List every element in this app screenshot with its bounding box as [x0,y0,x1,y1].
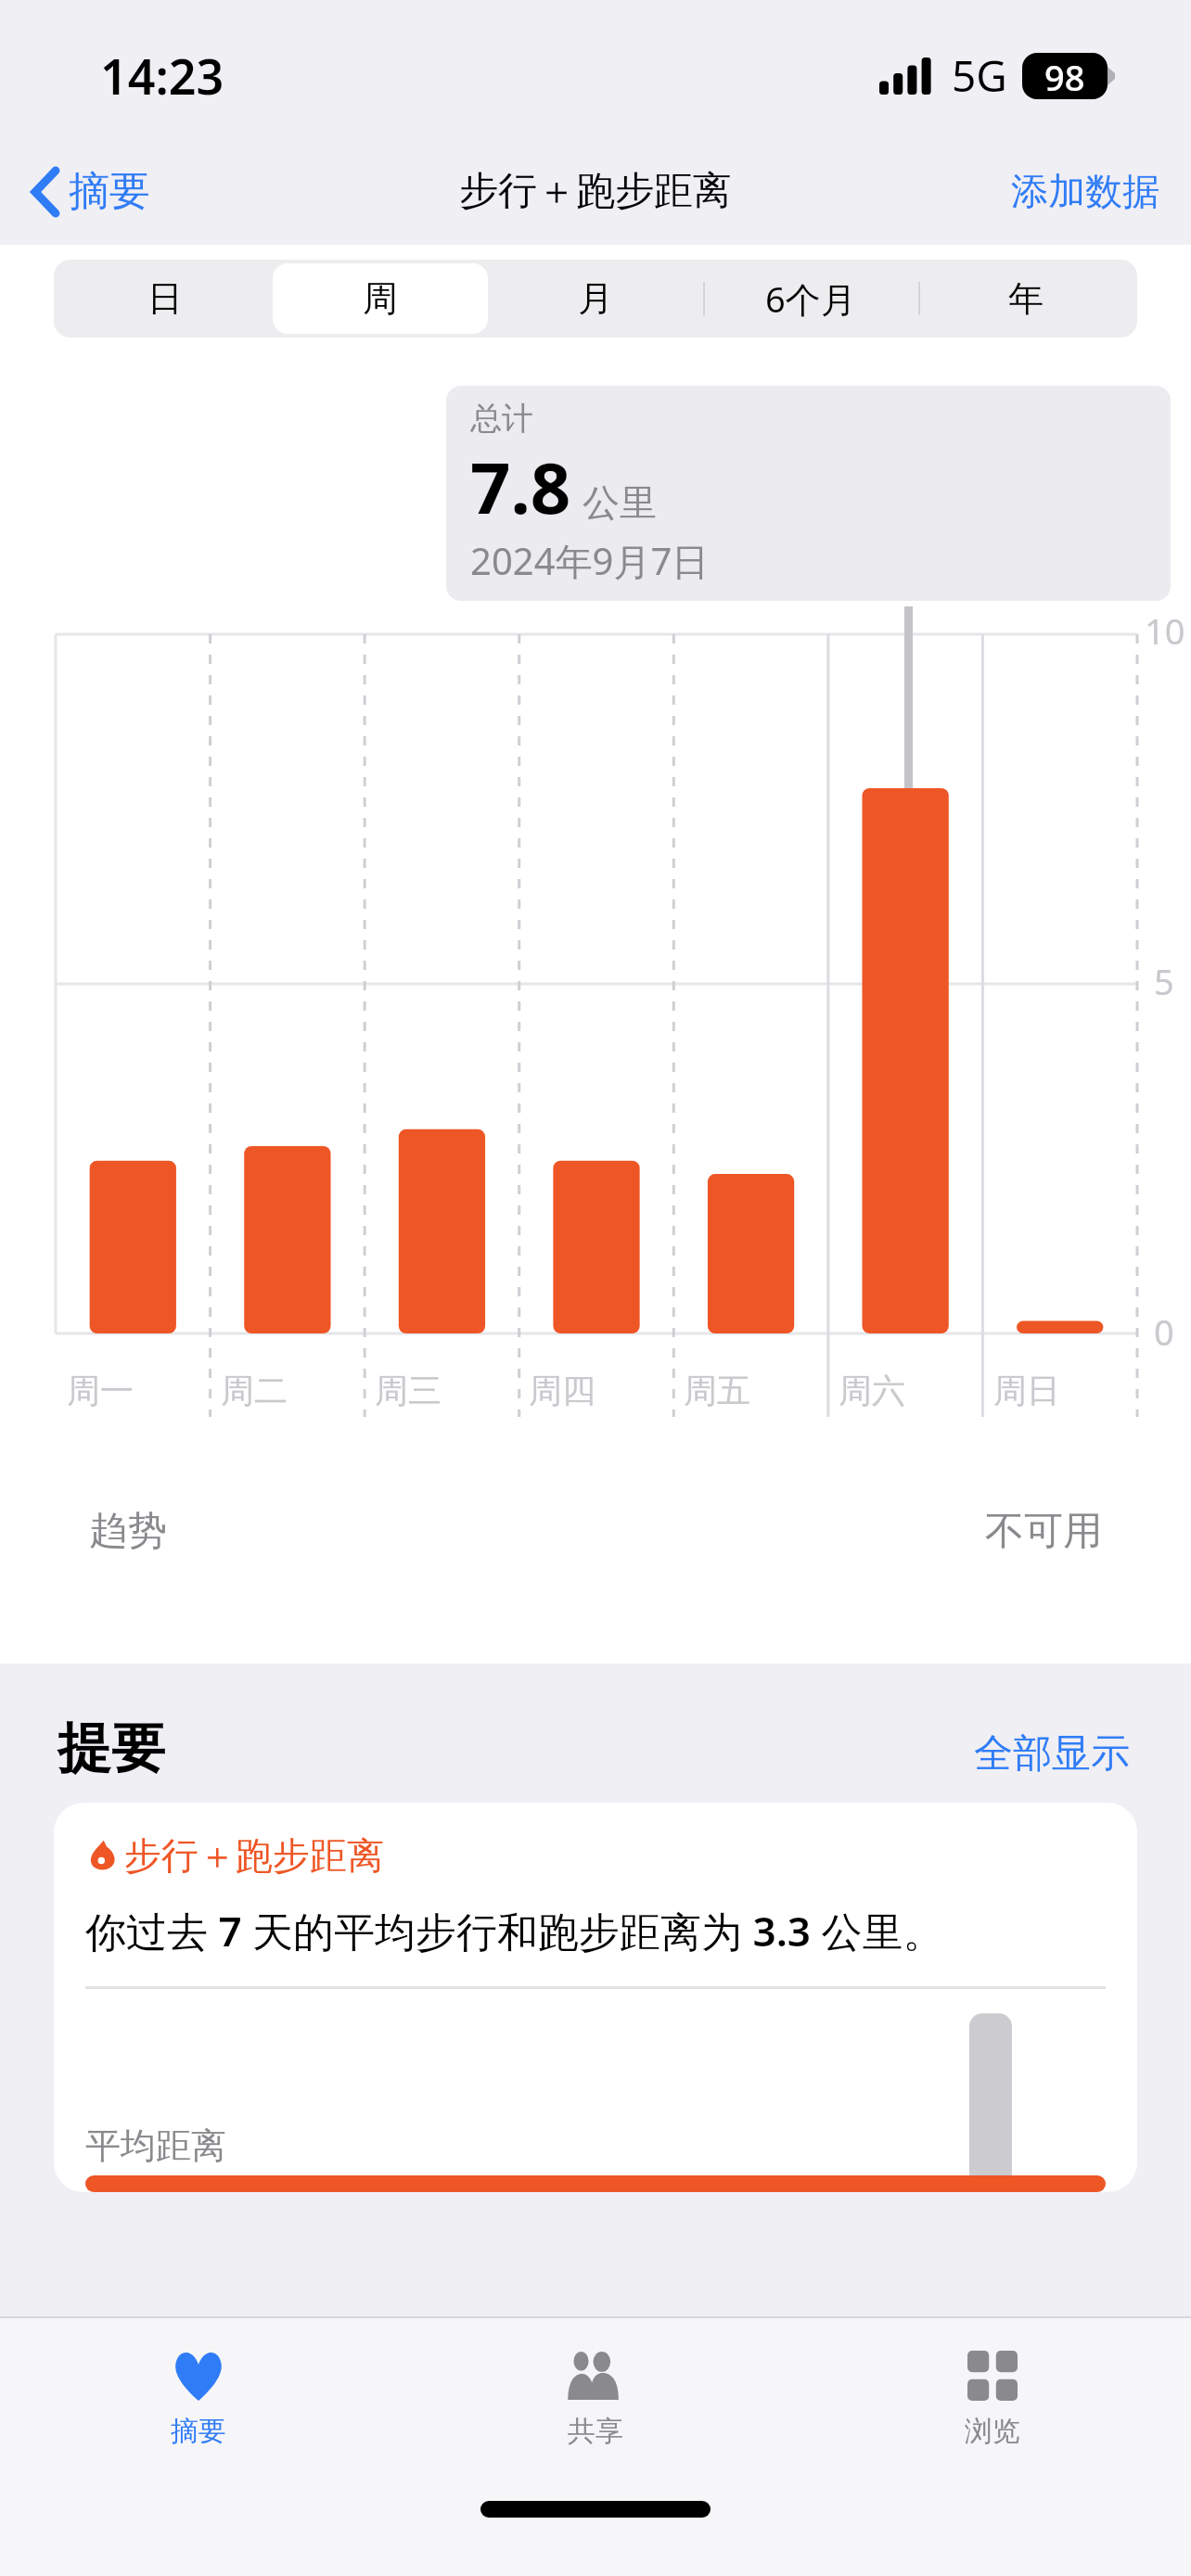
staticText: 2024年9月7日 [470,535,710,586]
staticText: 公里 [583,479,657,526]
staticText: 步行＋跑步距离 [459,167,732,216]
button[interactable]: 趋势 [56,1461,1135,1600]
staticText: 平均距离 [85,2123,226,2168]
staticText: 7.8 [470,439,571,535]
button[interactable]: 浏览 [794,2318,1191,2476]
staticText: 周一 [67,1370,134,1411]
staticText: 5 [1145,957,1174,1005]
staticText: 周二 [221,1370,288,1411]
staticText: 月 [578,276,613,321]
staticText: 摘要 [171,2414,226,2449]
staticText: 年 [1008,276,1044,321]
staticText: 步行＋跑步距离 [124,1832,384,1879]
staticText: 14:23 [100,43,224,108]
button[interactable]: 摘要 [0,159,165,224]
button[interactable]: 周 [273,263,488,334]
button[interactable]: 年 [918,263,1133,334]
staticText: 周日 [993,1370,1060,1411]
button[interactable]: 共享 [397,2318,794,2476]
staticText: 周五 [684,1370,750,1411]
staticText: 10 [1145,606,1185,655]
staticText: 不可用 [985,1507,1102,1556]
button[interactable]: 步行＋跑步距离 [54,1803,1137,2192]
staticText: 你过去 7 天的平均步行和跑步距离为 3.3 公里。 [85,1903,944,1958]
button[interactable]: 月 [488,263,703,334]
staticText: 5G [952,46,1007,105]
staticText: 0 [1145,1307,1174,1356]
staticText: 周 [363,276,398,321]
staticText: 趋势 [89,1507,167,1556]
staticText: 总计 [470,399,533,439]
staticText: 98 [1044,53,1085,99]
button[interactable]: 添加数据 [980,159,1191,223]
staticText: 6个月 [765,274,856,323]
staticText: 摘要 [69,166,150,217]
button[interactable]: 摘要 [0,2318,397,2476]
staticText: 周六 [839,1370,905,1411]
staticText: 浏览 [965,2414,1020,2449]
button[interactable]: 全部显示 [970,1726,1133,1782]
button[interactable]: 6个月 [703,263,918,334]
staticText: 周三 [375,1370,442,1411]
staticText: 提要 [58,1715,165,1782]
staticText: 共享 [568,2414,623,2449]
staticText: 日 [147,276,183,321]
button[interactable]: 日 [58,263,273,334]
staticText: 周四 [529,1370,595,1411]
